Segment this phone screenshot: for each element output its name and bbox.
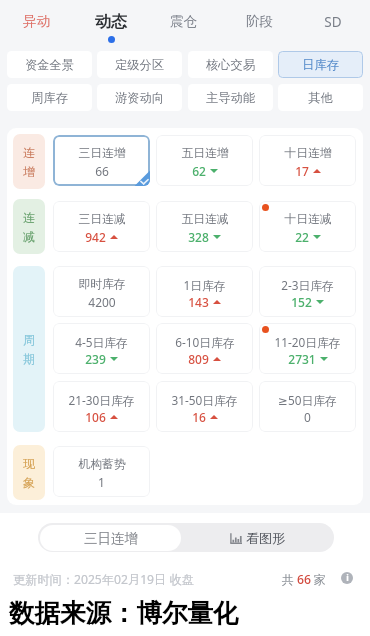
button[interactable]: 11-20日库存 <box>259 323 356 374</box>
staticText: 核心交易 <box>206 57 255 72</box>
staticText: 809 <box>188 351 209 367</box>
button[interactable]: 震仓 <box>155 0 211 46</box>
button[interactable]: 核心交易 <box>188 51 273 78</box>
staticText: SD <box>324 13 342 31</box>
staticText: 31-50日库存 <box>171 392 238 408</box>
button[interactable]: 31-50日库存 <box>156 381 253 432</box>
button[interactable]: 三日连减 <box>53 201 150 252</box>
staticText: 22 <box>295 229 309 245</box>
button[interactable]: 1日库存 <box>156 266 253 317</box>
staticText: 数据来源：博尔量化 <box>9 597 239 629</box>
button[interactable]: 十日连增 <box>259 135 356 186</box>
staticText: 328 <box>188 229 209 245</box>
staticText: 动态 <box>95 12 127 32</box>
button[interactable]: 异动 <box>8 0 64 46</box>
button[interactable]: 机构蓄势 <box>53 446 150 497</box>
staticText: 152 <box>291 294 312 310</box>
staticText: 62 <box>192 163 206 179</box>
button[interactable]: 十日连减 <box>259 201 356 252</box>
button[interactable]: SD <box>305 0 361 46</box>
staticText: 增 <box>23 164 35 179</box>
staticText: 游资动向 <box>115 90 164 105</box>
staticText: 主导动能 <box>206 90 255 105</box>
button[interactable]: 看图形 <box>183 525 332 551</box>
staticText: 共 <box>281 572 294 587</box>
button[interactable]: 日库存 <box>278 51 363 78</box>
button[interactable]: 动态 <box>83 0 139 46</box>
staticText: 五日连减 <box>181 212 229 227</box>
staticText: 看图形 <box>246 530 285 546</box>
staticText: 11-20日库存 <box>274 334 341 350</box>
staticText: 143 <box>188 294 209 310</box>
button[interactable]: 阶段 <box>231 0 287 46</box>
staticText: 五日连增 <box>181 146 229 161</box>
staticText: 2731 <box>288 351 316 367</box>
staticText: 阶段 <box>246 13 273 30</box>
staticText: 其他 <box>308 90 333 105</box>
staticText: 连 <box>23 145 35 160</box>
staticText: 资金全景 <box>25 57 74 72</box>
staticText: 周 <box>23 332 35 347</box>
staticText: 期 <box>23 351 35 366</box>
staticText: 日库存 <box>302 57 339 72</box>
button[interactable]: Info <box>341 572 353 584</box>
button[interactable]: 2-3日库存 <box>259 266 356 317</box>
staticText: 942 <box>85 229 106 245</box>
staticText: 即时库存 <box>78 277 126 292</box>
staticText: 减 <box>23 229 35 244</box>
staticText: 更新时间：2025年02月19日 收盘 <box>13 571 194 588</box>
button[interactable]: 周库存 <box>7 84 92 111</box>
staticText: 21-30日库存 <box>68 392 135 408</box>
staticText: 16 <box>192 409 206 425</box>
staticText: 1 <box>98 474 105 490</box>
staticText: 66 <box>95 163 109 179</box>
button[interactable]: 21-30日库存 <box>53 381 150 432</box>
button[interactable]: 五日连减 <box>156 201 253 252</box>
button[interactable]: 4-5日库存 <box>53 323 150 374</box>
button[interactable]: 定级分区 <box>97 51 182 78</box>
button[interactable]: 三日连增 <box>53 135 150 186</box>
staticText: ≥50日库存 <box>278 392 337 408</box>
staticText: 连 <box>23 210 35 225</box>
button[interactable]: 主导动能 <box>188 84 273 111</box>
staticText: 异动 <box>23 13 50 30</box>
staticText: 6-10日库存 <box>175 334 235 350</box>
staticText: 家 <box>313 572 326 587</box>
button[interactable]: 即时库存 <box>53 266 150 317</box>
button[interactable]: 其他 <box>278 84 363 111</box>
button[interactable]: 三日连增 <box>40 525 181 551</box>
staticText: 象 <box>23 475 35 490</box>
staticText: 机构蓄势 <box>78 457 126 472</box>
staticText: 2-3日库存 <box>281 277 334 293</box>
staticText: 17 <box>295 163 309 179</box>
staticText: 三日连减 <box>78 212 126 227</box>
staticText: i <box>346 572 349 584</box>
staticText: 十日连增 <box>284 146 332 161</box>
staticText: 239 <box>85 351 106 367</box>
button[interactable]: 6-10日库存 <box>156 323 253 374</box>
staticText: 0 <box>304 409 311 425</box>
staticText: 现 <box>23 456 35 471</box>
button[interactable]: ≥50日库存 <box>259 381 356 432</box>
staticText: 十日连减 <box>284 212 332 227</box>
staticText: 106 <box>85 409 106 425</box>
staticText: 三日连增 <box>84 530 138 547</box>
button[interactable]: 游资动向 <box>97 84 182 111</box>
button[interactable]: 五日连增 <box>156 135 253 186</box>
staticText: 周库存 <box>31 90 68 105</box>
button[interactable]: 资金全景 <box>7 51 92 78</box>
staticText: 4-5日库存 <box>75 334 128 350</box>
staticText: 定级分区 <box>115 57 164 72</box>
staticText: 震仓 <box>170 13 197 30</box>
staticText: 1日库存 <box>183 277 226 293</box>
staticText: 三日连增 <box>78 146 126 161</box>
staticText: 4200 <box>88 294 116 310</box>
staticText: 66 <box>297 571 311 588</box>
